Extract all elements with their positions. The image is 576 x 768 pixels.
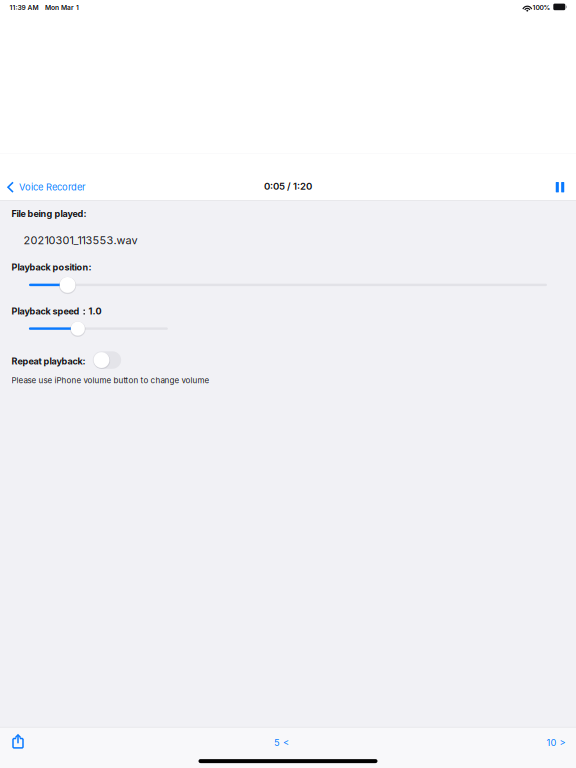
button[interactable]: Repeat playback [93,351,121,369]
staticText: Voice Recorder [19,182,86,193]
staticText: Mon Mar 1 [45,4,79,12]
staticText: Playback position: [12,262,92,273]
staticText: 100% [533,4,551,12]
button[interactable]: Share [3,728,33,754]
staticText: 11:39 AM [10,4,39,12]
staticText: Playback speed：1.0 [12,306,102,317]
staticText: File being played: [12,208,87,219]
staticText: Repeat playback: [12,356,86,367]
button[interactable]: Rewind 5 seconds [263,730,301,756]
button[interactable]: Pause [543,172,576,202]
staticText: 5 < [274,737,289,748]
staticText: Please use iPhone volume button to chang… [12,375,210,385]
staticText: 10 > [546,737,565,748]
staticText: 0:05 / 1:20 [264,180,312,192]
button[interactable]: Forward 10 seconds [537,730,575,756]
button[interactable]: Voice Recorder [0,172,94,202]
staticText: 20210301_113553.wav [24,234,138,247]
